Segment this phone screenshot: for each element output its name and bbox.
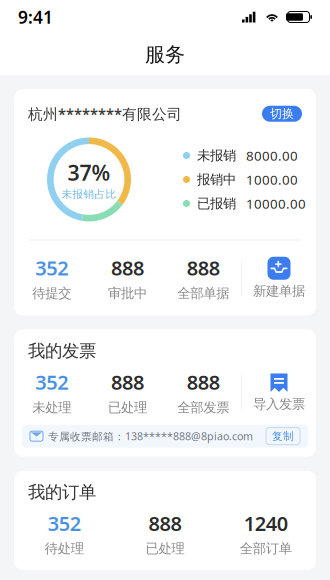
- staticText: 10000.00: [246, 195, 306, 212]
- button[interactable]: 新建单据: [242, 257, 316, 299]
- staticText: 352: [35, 369, 68, 395]
- staticText: 已处理: [145, 540, 184, 557]
- button[interactable]: 888: [90, 254, 165, 301]
- staticText: 已报销: [197, 195, 236, 212]
- staticText: 全部单据: [177, 285, 229, 301]
- staticText: 888: [187, 254, 220, 281]
- staticText: 报销中: [197, 171, 236, 188]
- button[interactable]: 888: [115, 510, 215, 557]
- staticText: 未报销占比: [61, 188, 116, 201]
- staticText: 复制: [272, 430, 294, 443]
- staticText: 导入发票: [253, 396, 305, 412]
- staticText: 我的发票: [28, 340, 96, 362]
- staticText: 专属收票邮箱：138*****888@8piao.com: [48, 429, 253, 443]
- staticText: 8000.00: [246, 147, 298, 164]
- button[interactable]: 352: [14, 369, 90, 416]
- staticText: 审批中: [108, 285, 147, 301]
- button[interactable]: 352: [14, 510, 115, 557]
- staticText: 37%: [67, 158, 110, 187]
- staticText: 已处理: [108, 399, 147, 416]
- button[interactable]: 导入发票: [242, 372, 316, 412]
- button[interactable]: 888: [165, 369, 241, 416]
- staticText: 全部订单: [240, 540, 292, 557]
- button[interactable]: 1240: [215, 510, 316, 557]
- staticText: 待处理: [45, 540, 84, 557]
- staticText: 未处理: [32, 399, 71, 416]
- staticText: 888: [187, 369, 220, 395]
- staticText: 服务: [145, 42, 185, 67]
- staticText: 352: [35, 254, 68, 281]
- staticText: 1000.00: [246, 171, 298, 188]
- staticText: 1240: [244, 510, 288, 536]
- staticText: 未报销: [197, 147, 236, 164]
- button[interactable]: 888: [90, 369, 165, 416]
- staticText: 888: [111, 369, 144, 395]
- button[interactable]: 复制: [266, 428, 300, 445]
- button[interactable]: 切换: [262, 106, 302, 122]
- staticText: 888: [111, 254, 144, 281]
- button[interactable]: 888: [165, 254, 241, 301]
- staticText: 切换: [270, 106, 294, 121]
- staticText: 9:41: [18, 5, 53, 28]
- staticText: 我的订单: [28, 482, 96, 503]
- staticText: 新建单据: [253, 283, 305, 299]
- staticText: 352: [48, 510, 81, 536]
- staticText: 待提交: [32, 285, 71, 301]
- staticText: 杭州********有限公司: [28, 104, 182, 123]
- staticText: 888: [148, 510, 181, 536]
- button[interactable]: 352: [14, 254, 90, 301]
- staticText: 全部发票: [177, 399, 229, 416]
